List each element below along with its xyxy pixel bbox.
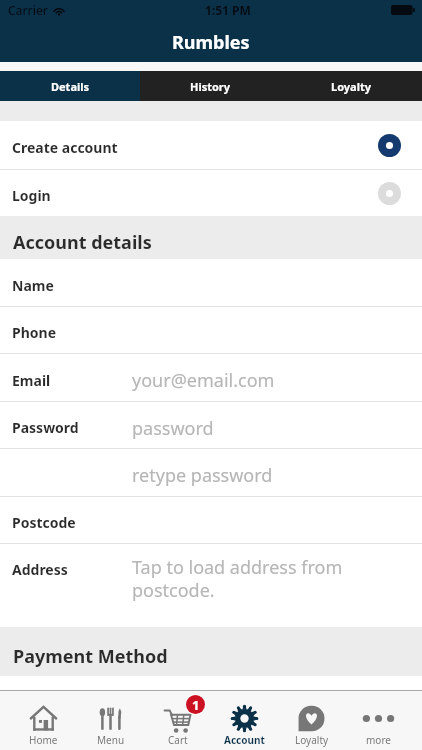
- staticText: Menu: [97, 733, 125, 747]
- staticText: Phone: [12, 323, 57, 342]
- other: Selected: [378, 134, 401, 157]
- button[interactable]: 1: [144, 691, 211, 750]
- staticText: Account: [224, 733, 265, 747]
- button[interactable]: Loyalty: [278, 691, 345, 750]
- button[interactable]: Create account: [0, 121, 422, 169]
- button[interactable]: Home: [10, 691, 77, 750]
- button[interactable]: Postcode: [0, 497, 422, 543]
- button[interactable]: more: [345, 691, 412, 750]
- staticText: Details: [51, 79, 90, 94]
- button[interactable]: Menu: [77, 691, 144, 750]
- button[interactable]: Account: [211, 691, 278, 750]
- staticText: Payment Method: [13, 644, 168, 669]
- staticText: Rumbles: [172, 30, 250, 55]
- staticText: 1: [192, 696, 200, 714]
- staticText: Postcode: [12, 513, 76, 532]
- button[interactable]: Email: [0, 354, 422, 401]
- staticText: password: [132, 416, 214, 441]
- staticText: Address: [12, 560, 68, 579]
- button[interactable]: Phone: [0, 307, 422, 353]
- staticText: Email: [12, 371, 51, 390]
- staticText: Loyalty: [331, 79, 372, 94]
- staticText: retype password: [132, 463, 273, 488]
- button[interactable]: Details: [0, 71, 140, 101]
- staticText: Create account: [12, 138, 118, 157]
- staticText: Loyalty: [295, 733, 329, 747]
- staticText: Tap to load address from postcode.: [132, 555, 343, 602]
- staticText: more: [366, 733, 391, 747]
- button[interactable]: Address: [0, 544, 422, 627]
- button[interactable]: Name: [0, 259, 422, 306]
- button[interactable]: Password: [0, 402, 422, 448]
- button[interactable]: Loyalty: [281, 71, 422, 101]
- staticText: Login: [12, 186, 51, 205]
- staticText: Carrier: [8, 2, 48, 18]
- staticText: Cart: [168, 733, 188, 747]
- staticText: Account details: [13, 230, 152, 255]
- staticText: Password: [12, 418, 79, 437]
- button[interactable]: History: [140, 71, 281, 101]
- button[interactable]: Login: [0, 170, 422, 216]
- button[interactable]: retype password: [0, 449, 422, 496]
- other: Not selected: [378, 182, 401, 205]
- staticText: Name: [12, 276, 54, 295]
- staticText: Home: [29, 733, 58, 747]
- staticText: History: [190, 79, 231, 94]
- staticText: 1:51 PM: [205, 2, 251, 18]
- staticText: your@email.com: [132, 368, 275, 393]
